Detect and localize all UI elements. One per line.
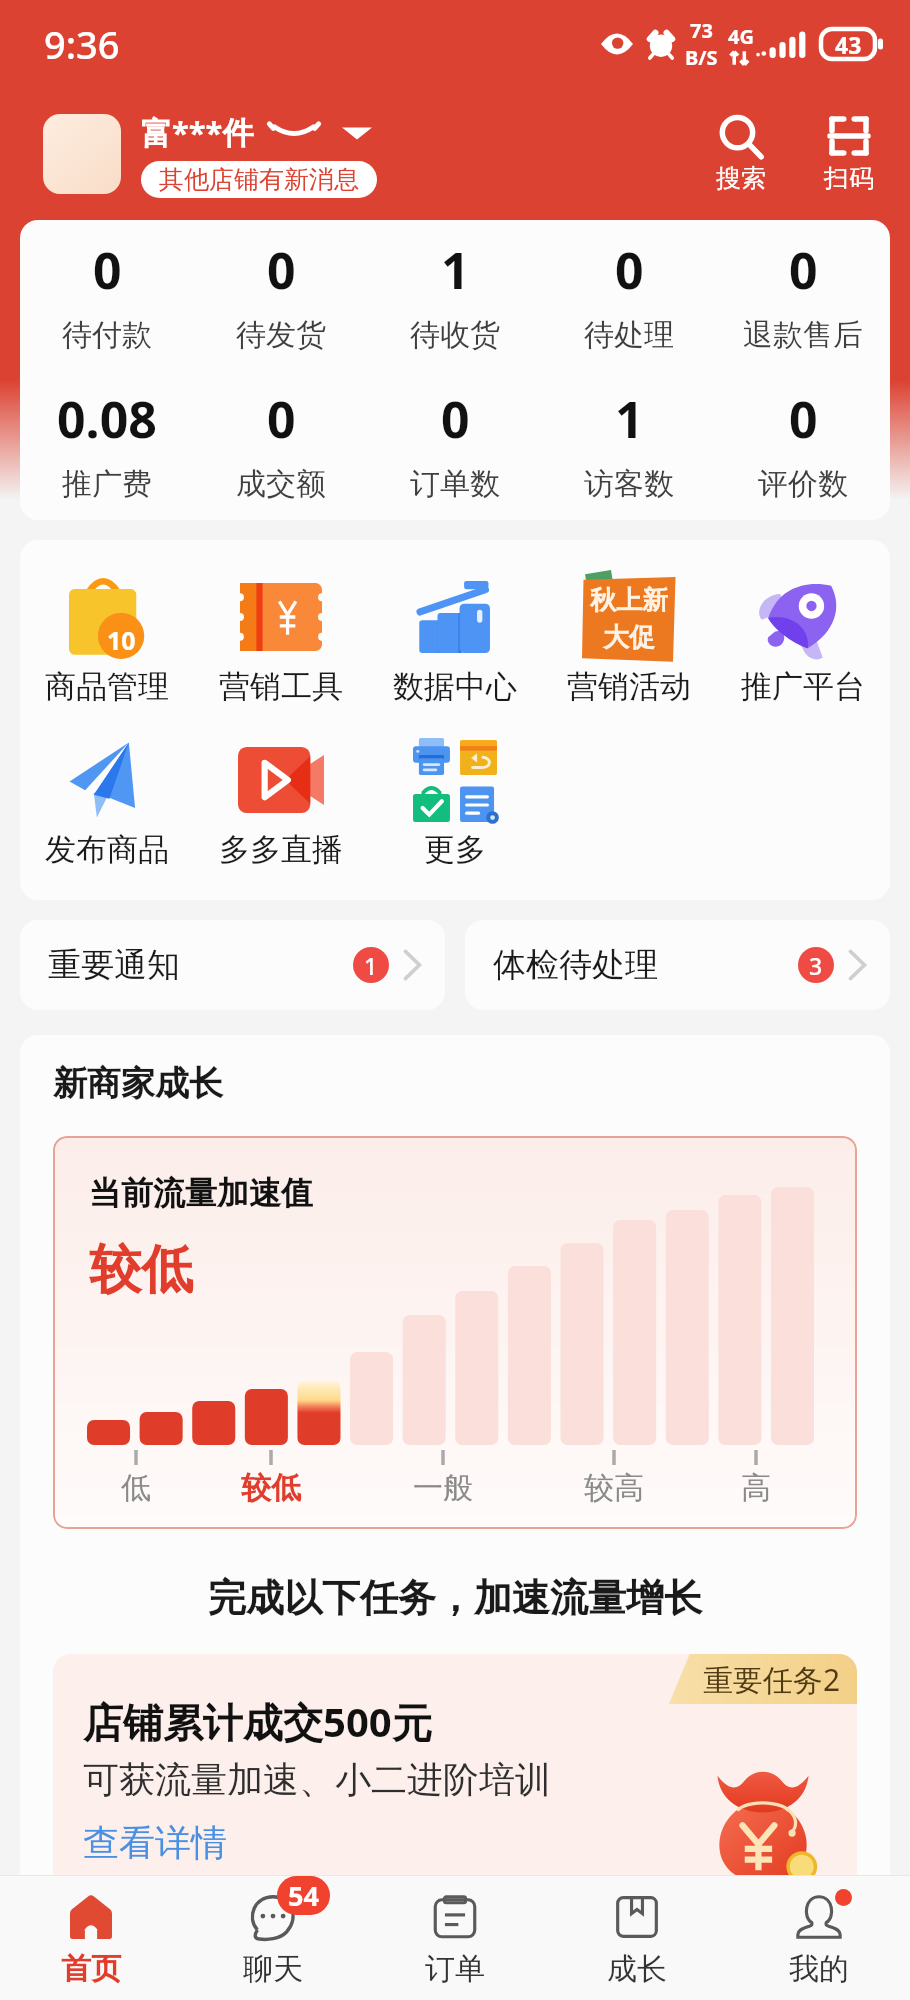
staticText: 4G — [728, 23, 754, 50]
staticText: B/S — [685, 44, 718, 71]
staticText: 0 — [267, 385, 296, 453]
staticText: 营销活动 — [567, 667, 691, 706]
button[interactable]: 搜索 — [706, 115, 776, 194]
staticText: 成长 — [607, 1950, 667, 1988]
staticText: 较低 — [241, 1469, 301, 1507]
staticText: 高 — [741, 1469, 771, 1507]
button[interactable]: 1 — [368, 236, 542, 354]
button[interactable]: 0 — [194, 385, 368, 503]
staticText: 扫码 — [824, 163, 874, 194]
staticText: 搜索 — [716, 163, 766, 194]
button[interactable]: 10 — [20, 567, 194, 706]
staticText: 待收货 — [410, 316, 500, 354]
button[interactable]: 0 — [368, 385, 542, 503]
button[interactable]: 重要通知 — [20, 920, 445, 1010]
staticText: 重要通知 — [48, 944, 180, 986]
staticText: 0 — [789, 236, 818, 304]
staticText: 数据中心 — [393, 667, 517, 706]
button[interactable]: 扫码 — [814, 115, 884, 194]
staticText: 订单 — [425, 1950, 485, 1988]
staticText: 0 — [267, 236, 296, 304]
staticText: 一般 — [413, 1469, 473, 1507]
button[interactable]: 秋上新 — [542, 567, 716, 706]
staticText: 大促 — [603, 621, 655, 654]
staticText: 0 — [93, 236, 122, 304]
button[interactable]: 0 — [542, 236, 716, 354]
button[interactable]: 其他店铺有新消息 — [141, 161, 377, 198]
staticText: 店铺累计成交500元 — [83, 1694, 432, 1749]
button[interactable]: 我的 — [728, 1876, 910, 2000]
button[interactable]: Hide info — [272, 123, 316, 141]
staticText: 低 — [121, 1469, 151, 1507]
button[interactable]: 成长 — [546, 1876, 728, 2000]
staticText: 待付款 — [62, 316, 152, 354]
staticText: 0 — [441, 385, 470, 453]
staticText: 成交额 — [236, 465, 326, 503]
staticText: 体检待处理 — [493, 944, 658, 986]
button[interactable]: 体检待处理 — [465, 920, 890, 1010]
staticText: 可获流量加速、小二进阶培训 — [83, 1757, 551, 1802]
button[interactable]: 1 — [542, 385, 716, 503]
staticText: 9:36 — [44, 18, 120, 70]
staticText: 完成以下任务，加速流量增长 — [53, 1574, 857, 1622]
staticText: 更多 — [424, 830, 486, 869]
button[interactable]: Switch shop — [342, 122, 372, 142]
staticText: 多多直播 — [219, 830, 343, 869]
staticText: 新商家成长 — [53, 1062, 223, 1105]
button[interactable]: 0 — [716, 385, 890, 503]
staticText: 推广费 — [62, 465, 152, 503]
button[interactable]: 首页 — [0, 1876, 182, 2000]
staticText: 待发货 — [236, 316, 326, 354]
button[interactable]: 0.08 — [20, 385, 194, 503]
staticText: 54 — [288, 1877, 319, 1914]
staticText: 商品管理 — [45, 667, 169, 706]
staticText: 聊天 — [243, 1950, 303, 1988]
staticText: 我的 — [789, 1950, 849, 1988]
staticText: 推广平台 — [741, 667, 865, 706]
staticText: 73 — [690, 17, 713, 44]
staticText: 评价数 — [758, 465, 848, 503]
button[interactable]: 推广平台 — [716, 567, 890, 706]
staticText: 1 — [615, 385, 644, 453]
staticText: 当前流量加速值 — [89, 1173, 313, 1213]
button[interactable]: Shop avatar — [43, 114, 121, 194]
staticText: 较低 — [89, 1237, 193, 1303]
staticText: 秋上新 — [590, 584, 668, 617]
staticText: 0.08 — [57, 385, 157, 453]
button[interactable]: 54 — [182, 1876, 364, 2000]
staticText: 退款售后 — [743, 316, 863, 354]
staticText: 富***件 — [141, 111, 254, 153]
staticText: 访客数 — [584, 465, 674, 503]
staticText: 发布商品 — [45, 830, 169, 869]
staticText: 订单数 — [410, 465, 500, 503]
button[interactable]: 订单 — [364, 1876, 546, 2000]
staticText: 重要任务2 — [703, 1659, 841, 1700]
staticText: 较高 — [584, 1469, 644, 1507]
button[interactable]: 数据中心 — [368, 567, 542, 706]
staticText: 1 — [441, 236, 470, 304]
staticText: 营销工具 — [219, 667, 343, 706]
staticText: 其他店铺有新消息 — [159, 164, 359, 195]
staticText: 0 — [615, 236, 644, 304]
staticText: 3 — [809, 950, 823, 981]
staticText: 0 — [789, 385, 818, 453]
button[interactable]: 营销工具 — [194, 567, 368, 706]
staticText: 查看详情 — [83, 1820, 227, 1865]
button[interactable]: 0 — [20, 236, 194, 354]
staticText: 1 — [364, 950, 378, 981]
staticText: 10 — [107, 623, 136, 657]
staticText: 待处理 — [584, 316, 674, 354]
button[interactable]: 重要任务2 — [53, 1654, 857, 1954]
button[interactable]: 0 — [194, 236, 368, 354]
button[interactable]: 多多直播 — [194, 730, 368, 869]
button[interactable]: 发布商品 — [20, 730, 194, 869]
button[interactable]: 0 — [716, 236, 890, 354]
button[interactable]: 更多 — [368, 730, 542, 869]
staticText: 43 — [835, 29, 862, 60]
staticText: 首页 — [61, 1950, 121, 1988]
